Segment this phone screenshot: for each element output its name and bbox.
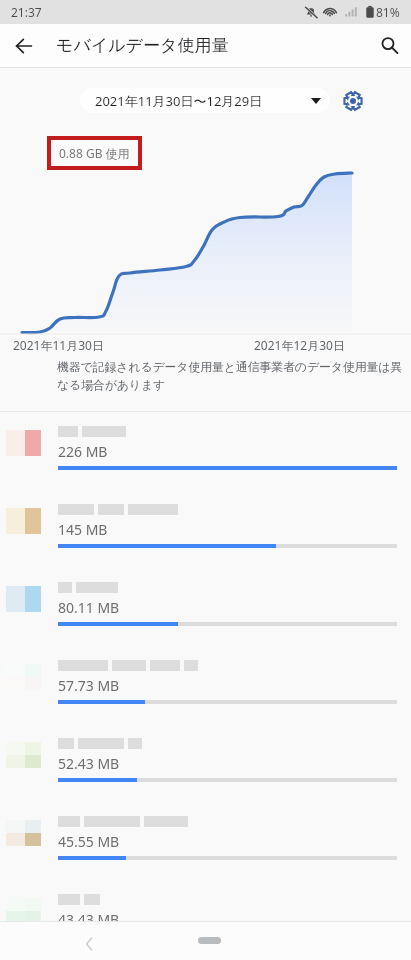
button[interactable]: 2021年11月30日〜12月29日 xyxy=(80,88,330,113)
staticText: 45.55 MB xyxy=(58,832,120,851)
staticText: 81% xyxy=(376,4,400,20)
staticText: 機器で記録されるデータ使用量と通信事業者のデータ使用量は異なる場合があります xyxy=(57,360,404,392)
staticText: 80.11 MB xyxy=(58,598,120,617)
button[interactable]: 226 MB xyxy=(0,412,411,490)
button[interactable]: 52.43 MB xyxy=(0,724,411,802)
staticText: モバイルデータ使用量 xyxy=(56,35,229,56)
button[interactable]: Search xyxy=(367,24,411,67)
staticText: 21:37 xyxy=(11,4,42,20)
button[interactable]: 43.43 MB xyxy=(0,880,411,958)
button[interactable]: Settings xyxy=(338,86,367,115)
button[interactable]: 80.11 MB xyxy=(0,568,411,646)
staticText: 2021年11月30日〜12月29日 xyxy=(95,92,263,110)
button[interactable]: 57.73 MB xyxy=(0,646,411,724)
button[interactable]: 45.55 MB xyxy=(0,802,411,880)
staticText: 52.43 MB xyxy=(58,754,120,773)
button[interactable]: Home xyxy=(198,937,221,944)
button[interactable]: 145 MB xyxy=(0,490,411,568)
staticText: 43.43 MB xyxy=(58,910,120,929)
staticText: 145 MB xyxy=(58,520,108,539)
staticText: 0.88 GB 使用 xyxy=(59,145,130,161)
button[interactable]: Back xyxy=(2,24,46,67)
staticText: 2021年12月30日 xyxy=(254,337,345,353)
button[interactable]: Back xyxy=(72,927,106,960)
staticText: 226 MB xyxy=(58,442,108,461)
staticText: 2021年11月30日 xyxy=(13,337,104,353)
staticText: 57.73 MB xyxy=(58,676,120,695)
